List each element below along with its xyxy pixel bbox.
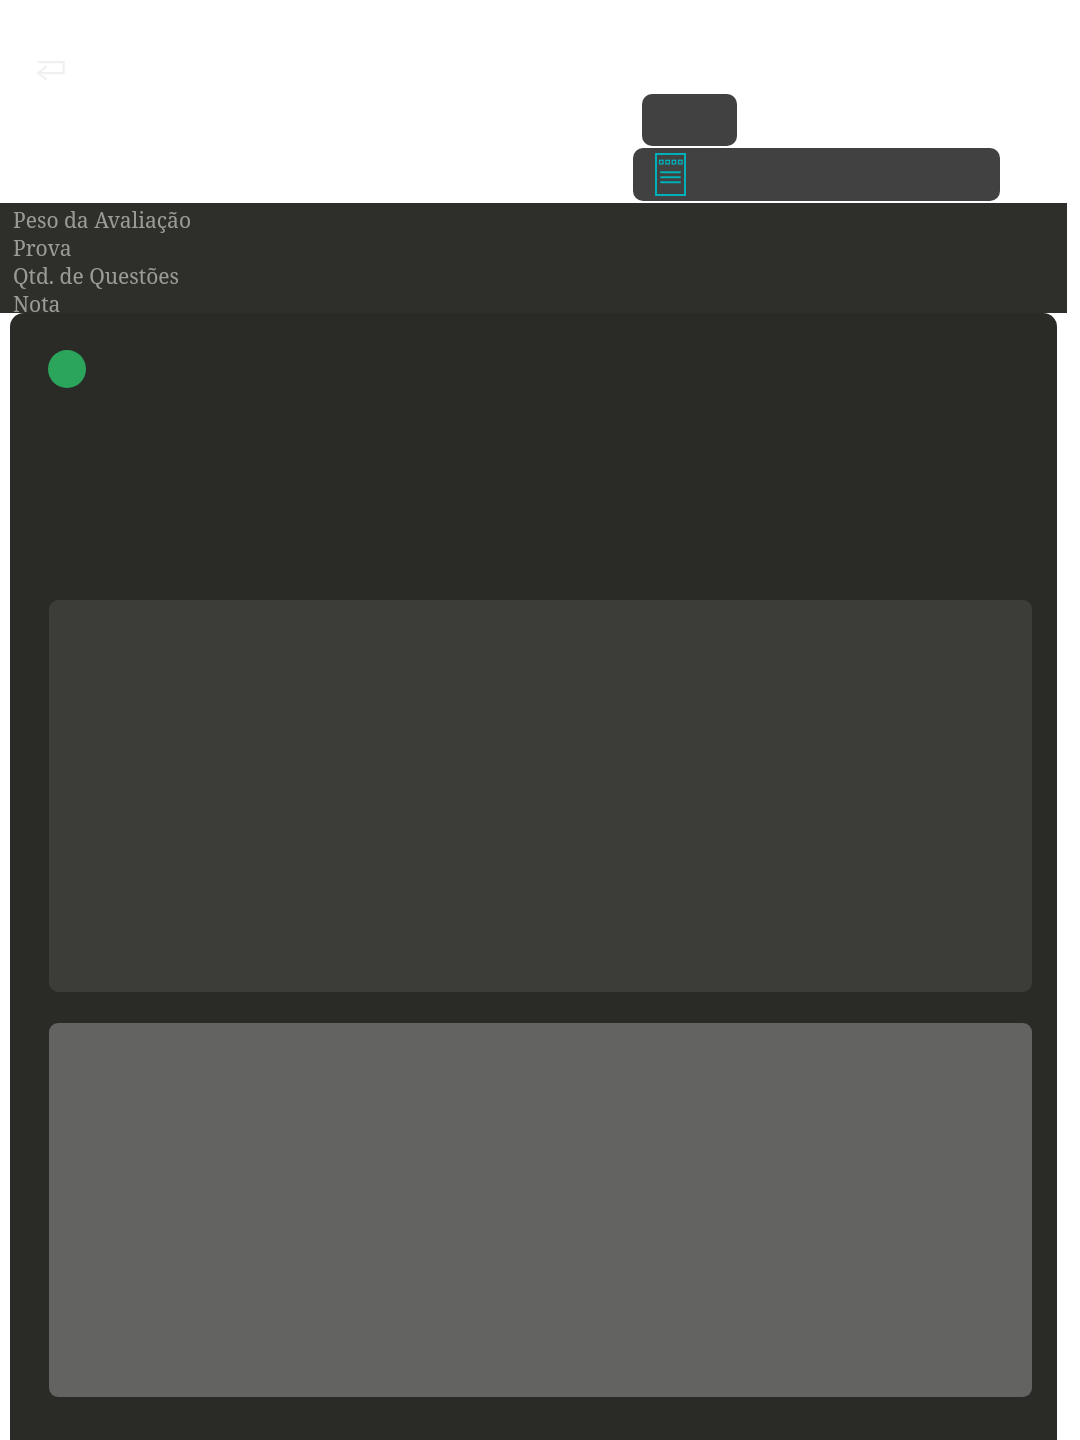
button[interactable] xyxy=(642,94,737,146)
staticText: Prova xyxy=(13,234,72,262)
other: Prova xyxy=(655,153,686,196)
button[interactable]: Prova xyxy=(633,148,1000,201)
staticText: Peso da Avaliação xyxy=(13,206,191,234)
button[interactable]: Voltar xyxy=(30,52,70,86)
staticText: Nota xyxy=(13,290,61,313)
button[interactable] xyxy=(48,350,86,388)
staticText: Qtd. de Questões xyxy=(13,262,180,290)
